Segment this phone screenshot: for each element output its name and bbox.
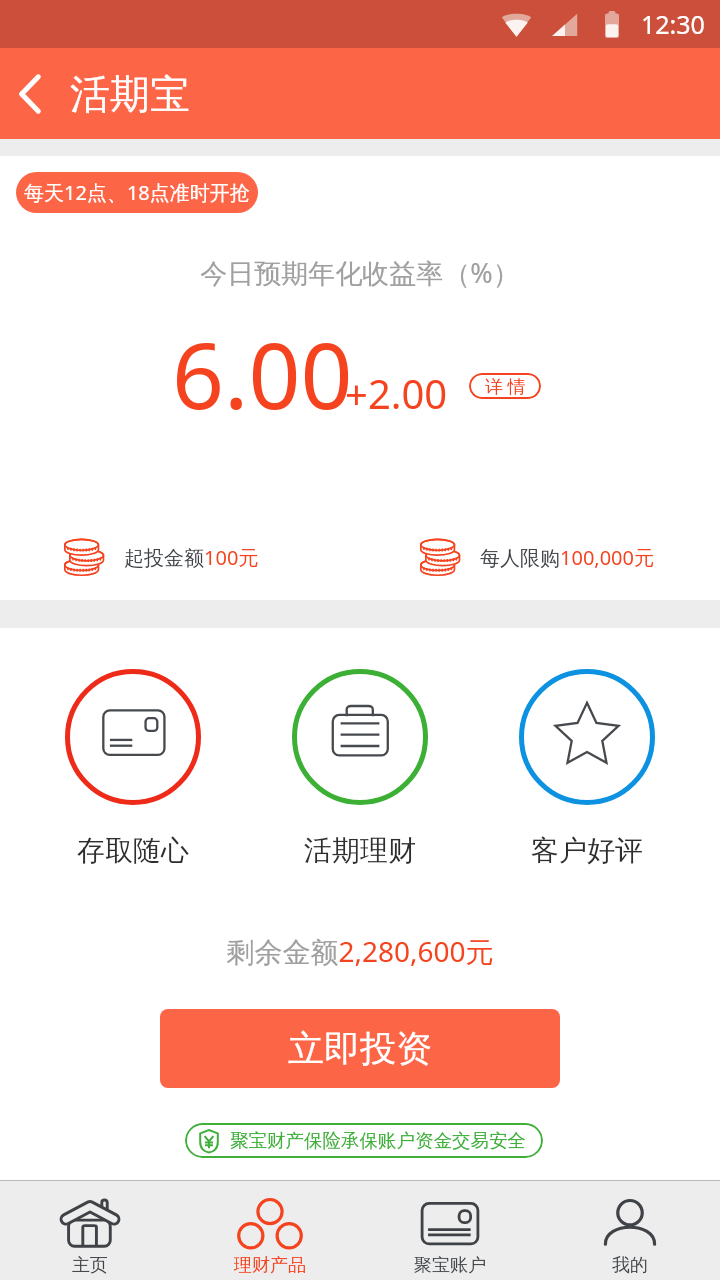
staticText: 客户好评 <box>531 833 643 868</box>
staticText: 起投金额100元 <box>124 544 259 571</box>
button[interactable]: 客户好评 <box>519 669 655 868</box>
button[interactable]: 起投金额100元 <box>64 536 259 578</box>
staticText: 详 情 <box>485 374 526 399</box>
staticText: 理财产品 <box>234 1254 306 1277</box>
staticText: 12:30 <box>641 7 705 41</box>
staticText: +2.00 <box>345 366 448 420</box>
staticText: 每人限购100,000元 <box>480 544 654 571</box>
button[interactable]: 详 情 <box>469 373 541 399</box>
staticText: 活期宝 <box>70 69 190 119</box>
staticText: 存取随心 <box>77 833 189 868</box>
staticText: 每天12点、18点准时开抢 <box>24 179 250 206</box>
button[interactable]: 聚宝账户 <box>360 1181 540 1280</box>
staticText: 我的 <box>612 1254 648 1277</box>
button[interactable]: 立即投资 <box>160 1009 560 1088</box>
staticText: 主页 <box>72 1254 108 1277</box>
button[interactable]: 每天12点、18点准时开抢 <box>16 172 258 213</box>
button[interactable]: 存取随心 <box>65 669 201 868</box>
staticText: 6.00 <box>172 312 353 436</box>
button[interactable]: 我的 <box>540 1181 720 1280</box>
staticText: 立即投资 <box>288 1026 432 1071</box>
staticText: 活期理财 <box>304 833 416 868</box>
button[interactable]: 活期理财 <box>292 669 428 868</box>
button[interactable]: 主页 <box>0 1181 180 1280</box>
staticText: 聚宝财产保险承保账户资金交易安全 <box>230 1129 526 1152</box>
staticText: 剩余金额2,280,600元 <box>0 932 720 970</box>
button[interactable]: 聚宝财产保险承保账户资金交易安全 <box>185 1123 543 1158</box>
button[interactable]: 每人限购100,000元 <box>420 536 654 578</box>
button[interactable]: Back <box>2 66 58 122</box>
staticText: 聚宝账户 <box>414 1254 486 1277</box>
staticText: 今日预期年化收益率（%） <box>0 254 720 291</box>
button[interactable]: 理财产品 <box>180 1181 360 1280</box>
